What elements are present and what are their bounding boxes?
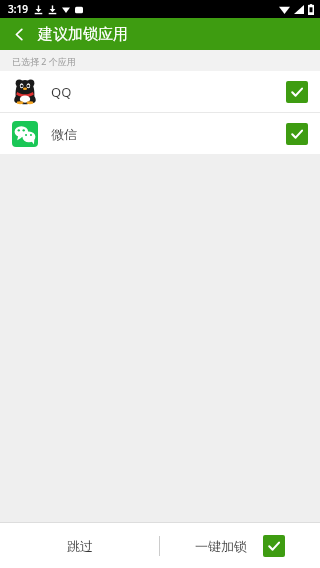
button[interactable]: Selected bbox=[263, 535, 285, 557]
button[interactable]: Selected bbox=[286, 81, 308, 103]
button[interactable]: 一键加锁 bbox=[160, 523, 320, 568]
staticText: 一键加锁 bbox=[195, 538, 247, 554]
button[interactable]: 微信 bbox=[0, 113, 320, 154]
staticText: 跳过 bbox=[67, 538, 93, 554]
staticText: 微信 bbox=[51, 126, 77, 142]
staticText: 建议加锁应用 bbox=[38, 25, 128, 44]
button[interactable]: QQ bbox=[0, 71, 320, 112]
staticText: 3:19 bbox=[8, 2, 28, 16]
button[interactable]: Back bbox=[0, 18, 38, 50]
staticText: 已选择 2 个应用 bbox=[12, 55, 76, 67]
staticText: QQ bbox=[51, 83, 72, 101]
button[interactable]: 跳过 bbox=[0, 523, 159, 568]
button[interactable]: Selected bbox=[286, 123, 308, 145]
